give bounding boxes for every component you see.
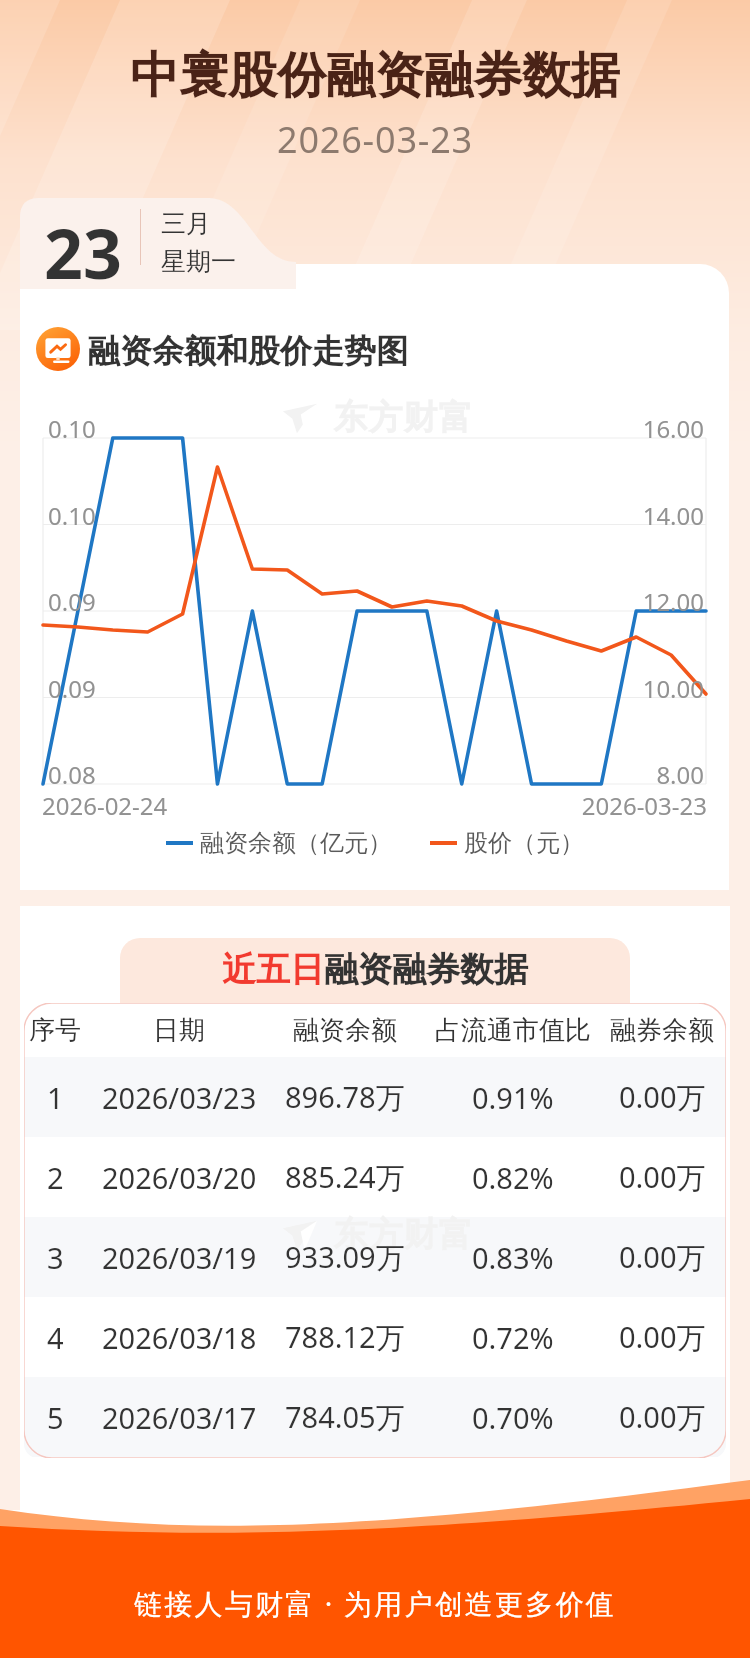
staticText: 0.83% — [472, 1238, 554, 1277]
staticText: 序号 — [29, 1014, 81, 1047]
staticText: 融券余额 — [610, 1014, 714, 1047]
staticText: 8.00 — [0, 758, 704, 791]
staticText: 东方财富 — [333, 396, 473, 439]
staticText: 788.12万 — [285, 1317, 405, 1357]
staticText: 2026/03/18 — [102, 1318, 257, 1357]
staticText: 0.09 — [48, 672, 96, 705]
staticText: 14.00 — [0, 499, 704, 532]
staticText: 1 — [47, 1078, 64, 1117]
staticText: 0.72% — [472, 1318, 554, 1357]
staticText: 0.00万 — [619, 1077, 706, 1117]
staticText: 0.00万 — [619, 1237, 706, 1277]
staticText: 0.70% — [472, 1398, 554, 1437]
staticText: 占流通市值比 — [435, 1014, 591, 1047]
staticText: 10.00 — [0, 672, 704, 705]
staticText: 股价（元） — [464, 828, 584, 858]
staticText: 885.24万 — [285, 1157, 405, 1197]
staticText: 784.05万 — [285, 1397, 405, 1437]
staticText: 2026-02-24 — [42, 789, 168, 822]
staticText: 链接人与财富 · 为用户创造更多价值 — [0, 1584, 750, 1622]
staticText: 0.00万 — [619, 1157, 706, 1197]
staticText: 933.09万 — [285, 1237, 405, 1277]
staticText: 日期 — [153, 1014, 205, 1047]
staticText: 896.78万 — [285, 1077, 405, 1117]
staticText: 东方财富 — [333, 1213, 473, 1256]
staticText: 0.82% — [472, 1158, 554, 1197]
staticText: 2026-03-23 — [0, 789, 707, 822]
staticText: 0.91% — [472, 1078, 554, 1117]
staticText: 0.00万 — [619, 1397, 706, 1437]
staticText: 5 — [47, 1398, 64, 1437]
staticText: 3 — [47, 1238, 64, 1277]
staticText: 0.00万 — [619, 1317, 706, 1357]
staticText: 中寰股份融资融券数据 — [0, 45, 750, 107]
staticText: 2026/03/23 — [102, 1078, 257, 1117]
staticText: 0.10 — [48, 412, 96, 445]
staticText: 2 — [47, 1158, 64, 1197]
staticText: 融资余额 — [293, 1014, 397, 1047]
staticText: 2026/03/17 — [102, 1398, 257, 1437]
staticText: 2026/03/19 — [102, 1238, 257, 1277]
staticText: 星期一 — [161, 246, 236, 277]
staticText: 12.00 — [0, 585, 704, 618]
staticText: 近五日融资融券数据 — [222, 948, 528, 991]
staticText: 23 — [44, 206, 122, 299]
staticText: 16.00 — [0, 412, 704, 445]
staticText: 融资余额（亿元） — [200, 828, 392, 858]
staticText: 2026/03/20 — [102, 1158, 257, 1197]
staticText: 0.09 — [48, 585, 96, 618]
staticText: 0.08 — [48, 758, 96, 791]
staticText: 融资余额和股价走势图 — [88, 331, 408, 371]
staticText: 三月 — [161, 208, 211, 239]
staticText: 0.10 — [48, 499, 96, 532]
staticText: 2026-03-23 — [0, 115, 750, 164]
staticText: 4 — [47, 1318, 64, 1357]
